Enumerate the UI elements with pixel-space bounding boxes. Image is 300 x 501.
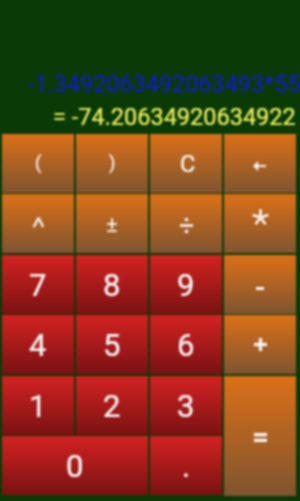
button[interactable]: (: [2, 134, 74, 193]
staticText: 8: [103, 267, 121, 303]
button[interactable]: 0: [2, 436, 148, 495]
button[interactable]: [224, 194, 296, 253]
button[interactable]: 6: [150, 315, 222, 374]
staticText: 2: [103, 388, 121, 424]
button[interactable]: [224, 315, 296, 374]
staticText: C: [180, 150, 196, 178]
button[interactable]: 2: [76, 376, 148, 435]
button[interactable]: 1: [2, 376, 74, 435]
button[interactable]: 5: [76, 315, 148, 374]
staticText: 7: [29, 267, 47, 303]
button[interactable]: [224, 376, 296, 496]
staticText: ±: [106, 212, 118, 238]
button[interactable]: C: [150, 134, 222, 193]
staticText: 4: [29, 327, 47, 363]
staticText: -1.3492063492063493*55: [28, 70, 300, 97]
button[interactable]: [224, 255, 296, 314]
button[interactable]: ): [76, 134, 148, 193]
button[interactable]: [224, 134, 296, 193]
staticText: 3: [177, 388, 195, 424]
button[interactable]: 3: [150, 376, 222, 435]
staticText: ): [109, 152, 116, 174]
staticText: 1: [29, 388, 47, 424]
button[interactable]: 4: [2, 315, 74, 374]
staticText: 5: [103, 327, 121, 363]
staticText: (: [35, 152, 42, 174]
staticText: 0: [66, 448, 84, 484]
button[interactable]: [150, 194, 222, 253]
staticText: 6: [177, 327, 195, 363]
button[interactable]: 7: [2, 255, 74, 314]
staticText: .: [182, 448, 191, 484]
button[interactable]: .: [150, 436, 222, 495]
button[interactable]: 9: [150, 255, 222, 314]
button[interactable]: [2, 194, 74, 253]
button[interactable]: ±: [76, 194, 148, 253]
staticText: 9: [177, 267, 195, 303]
staticText: = -74.20634920634922: [53, 103, 296, 131]
button[interactable]: 8: [76, 255, 148, 314]
